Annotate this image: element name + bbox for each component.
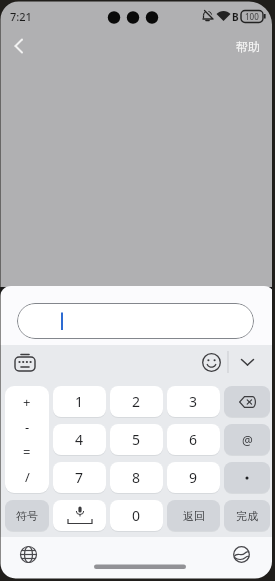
button[interactable] — [17, 303, 254, 339]
staticText: 2 — [132, 392, 141, 411]
staticText: 8 — [132, 468, 141, 487]
staticText: = — [23, 443, 31, 461]
button[interactable] — [14, 540, 42, 568]
button[interactable]: 符号 — [5, 500, 49, 531]
button[interactable]: 7 — [53, 462, 106, 493]
button[interactable]: 1 — [53, 386, 106, 417]
staticText: 100 — [245, 11, 259, 22]
button[interactable] — [224, 386, 270, 417]
staticText: - — [25, 418, 30, 436]
button[interactable] — [198, 349, 224, 375]
staticText: 7:21 — [10, 9, 32, 24]
staticText: 符号 — [16, 509, 38, 523]
button[interactable] — [12, 349, 38, 375]
staticText: 1 — [75, 392, 84, 411]
staticText: 返回 — [183, 509, 205, 523]
button[interactable]: 4 — [53, 424, 106, 455]
staticText: 0 — [132, 506, 141, 525]
staticText: @ — [242, 432, 253, 448]
button[interactable]: 8 — [110, 462, 163, 493]
button[interactable]: 0 — [110, 500, 163, 531]
button[interactable]: + — [5, 386, 49, 493]
staticText: 6 — [189, 430, 198, 449]
button[interactable]: 返回 — [167, 500, 220, 531]
staticText: 完成 — [236, 509, 258, 523]
button[interactable] — [224, 462, 270, 493]
staticText: 9 — [189, 468, 198, 487]
staticText: 7 — [75, 468, 84, 487]
button[interactable]: @ — [224, 424, 270, 455]
button[interactable]: 5 — [110, 424, 163, 455]
button[interactable]: 帮助 — [230, 33, 266, 59]
button[interactable] — [6, 33, 32, 59]
staticText: 4 — [75, 430, 84, 449]
button[interactable]: 6 — [167, 424, 220, 455]
button[interactable]: 2 — [110, 386, 163, 417]
staticText: B — [232, 10, 239, 24]
button[interactable]: 完成 — [224, 500, 270, 531]
button[interactable] — [53, 500, 106, 531]
staticText: 3 — [189, 392, 198, 411]
button[interactable]: 9 — [167, 462, 220, 493]
staticText: 帮助 — [236, 39, 260, 54]
button[interactable] — [227, 540, 255, 568]
staticText: 5 — [132, 430, 141, 449]
button[interactable] — [235, 349, 259, 375]
staticText: / — [25, 468, 30, 486]
button[interactable]: 3 — [167, 386, 220, 417]
staticText: + — [23, 393, 31, 411]
